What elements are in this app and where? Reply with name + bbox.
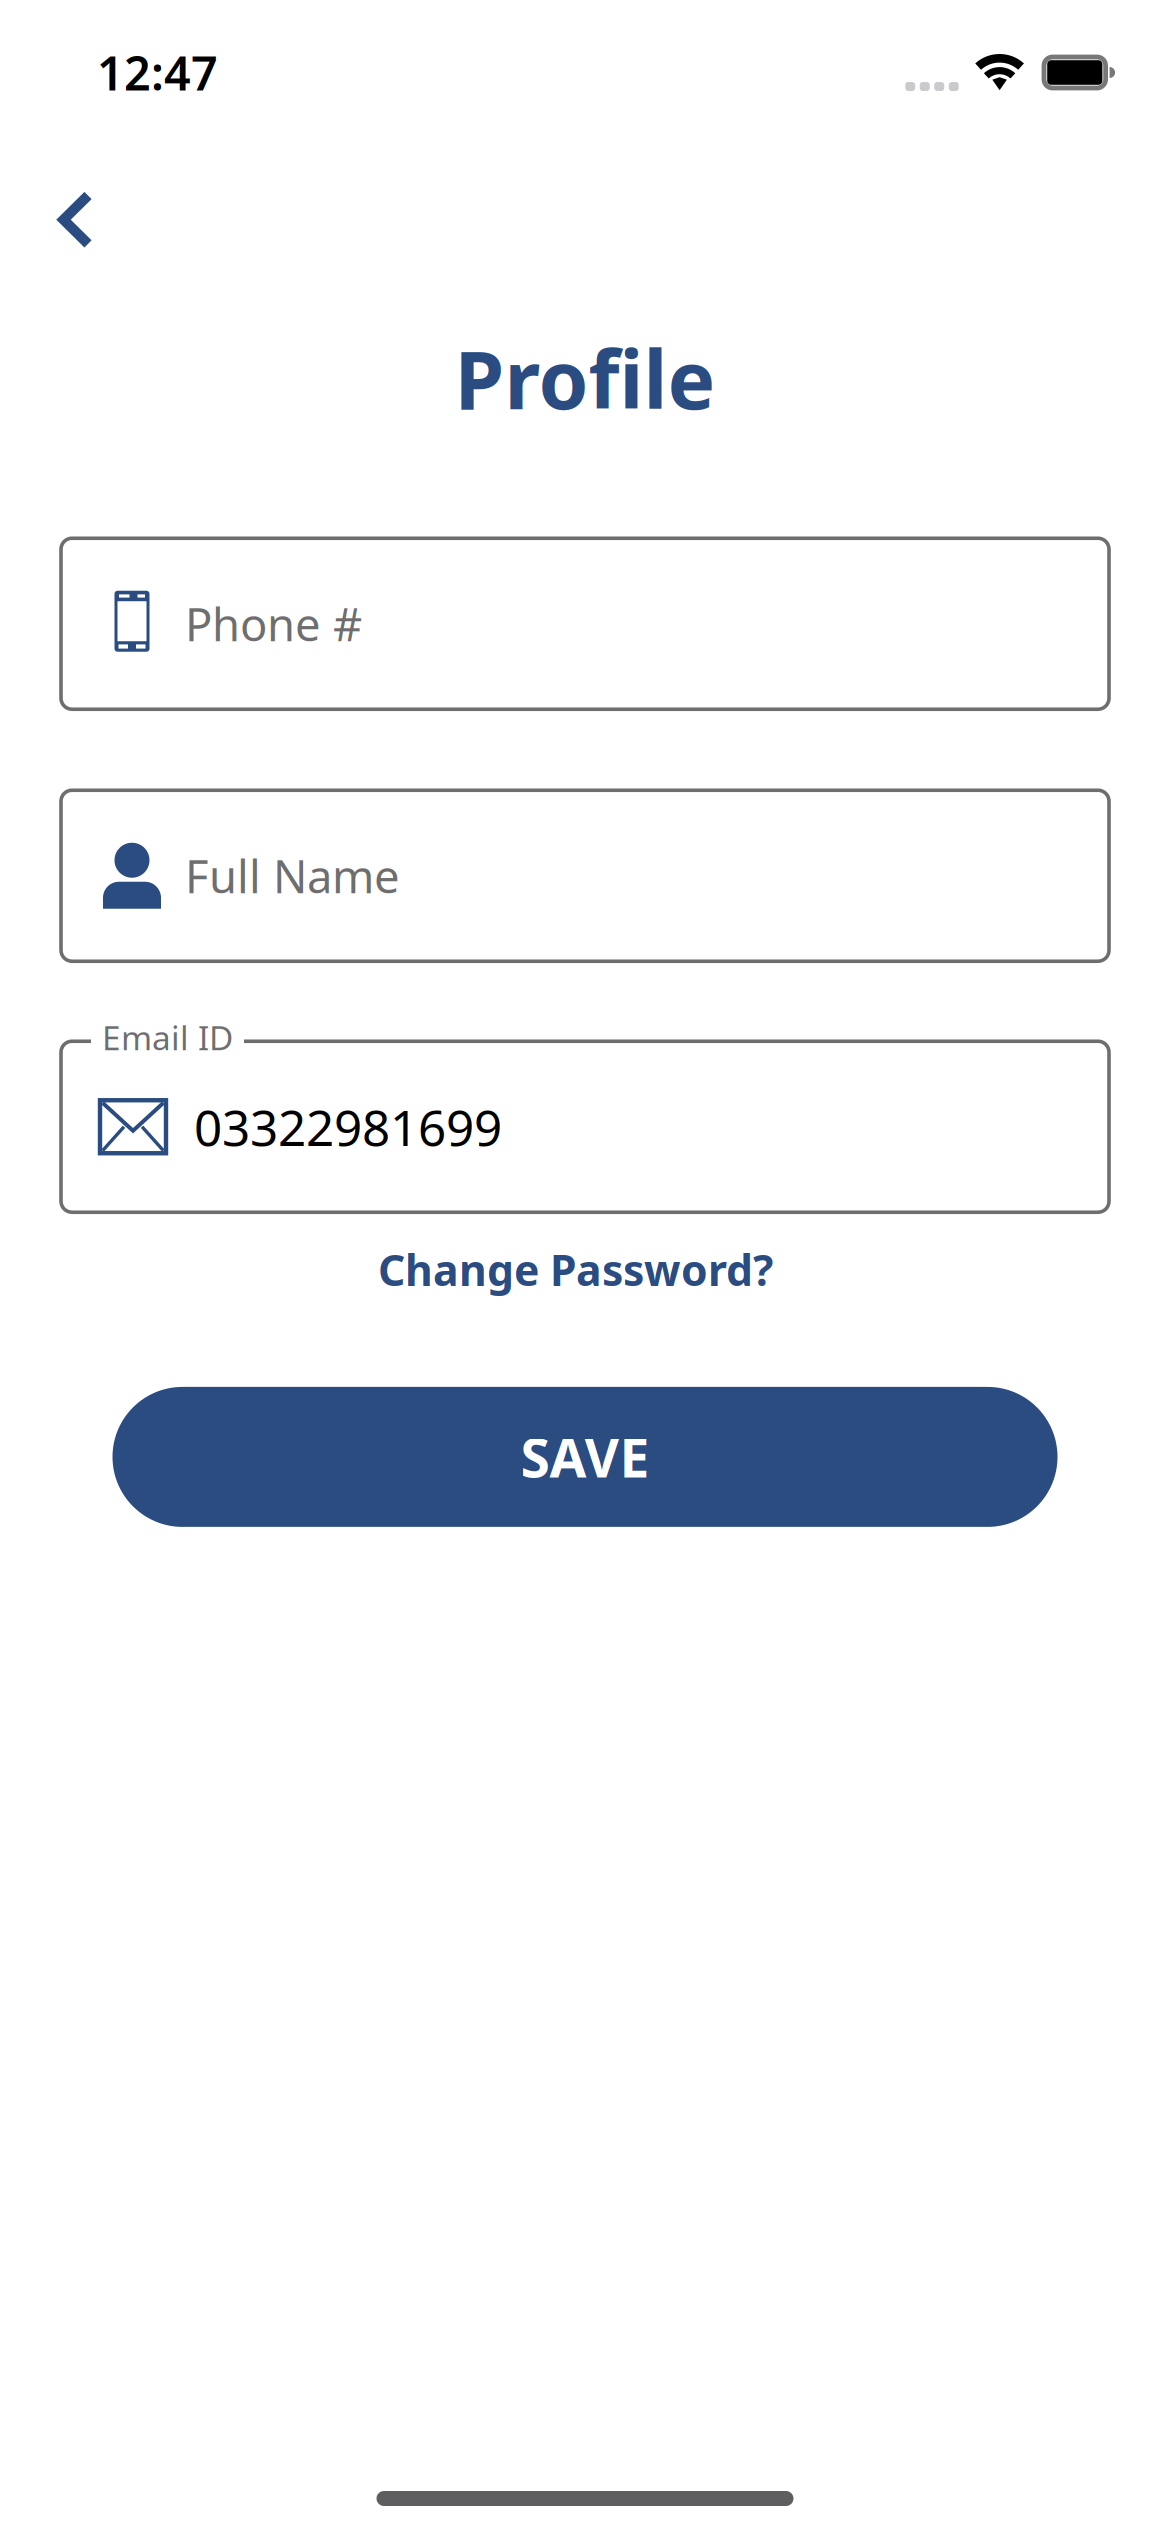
staticText: Profile — [454, 325, 715, 431]
staticText: Phone # — [185, 594, 362, 654]
button[interactable]: Change Password? — [358, 1229, 812, 1310]
staticText: 03322981699 — [194, 1094, 502, 1159]
button[interactable]: Phone # — [61, 538, 1109, 709]
staticText: Email ID — [102, 1015, 233, 1059]
staticText: SAVE — [520, 1421, 649, 1492]
button[interactable]: 03322981699 — [61, 1041, 1109, 1212]
button[interactable]: Back — [34, 145, 113, 269]
button[interactable]: Full Name — [61, 790, 1109, 961]
button[interactable]: SAVE — [112, 1387, 1057, 1527]
staticText: Change Password? — [378, 1241, 773, 1298]
staticText: 12:47 — [97, 41, 218, 103]
staticText: Full Name — [185, 846, 400, 906]
